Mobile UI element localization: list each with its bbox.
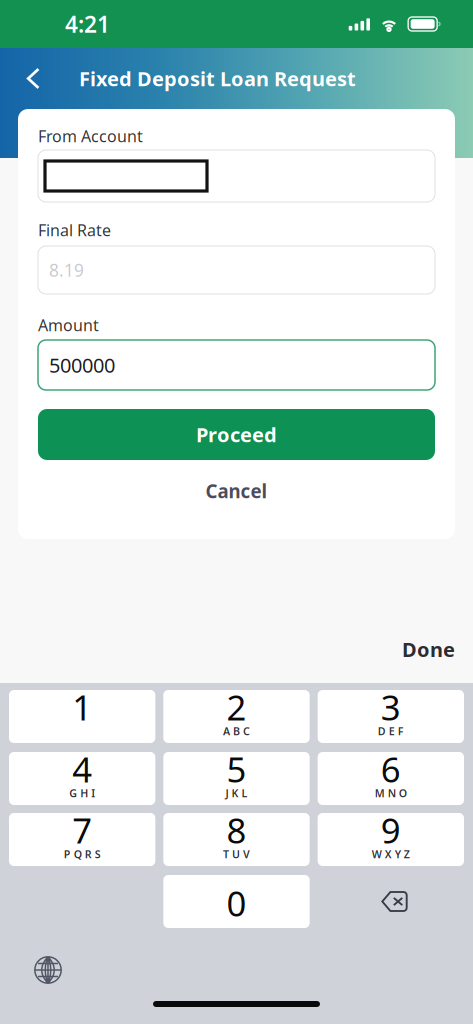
staticText: 0 [226,880,246,926]
staticText: 1 [72,684,92,730]
staticText: 8.19 [49,258,84,281]
button[interactable]: 0 [163,875,310,928]
staticText: 5 [226,746,246,792]
button[interactable]: 1 [9,690,155,743]
button[interactable]: Done [384,631,473,668]
staticText: Cancel [205,479,267,503]
button[interactable]: Back [12,56,54,100]
staticText: A B C [223,724,250,738]
staticText: 4:21 [65,9,110,39]
staticText: G H I [69,786,95,800]
staticText: 9 [381,807,401,853]
staticText: 500000 [49,352,115,378]
staticText: D E F [378,724,404,738]
staticText: T U V [223,847,250,861]
staticText: Fixed Deposit Loan Request [79,65,356,92]
staticText: 8 [226,807,246,853]
staticText: M N O [375,786,407,800]
staticText: Done [402,636,455,663]
staticText: 7 [72,807,92,853]
button[interactable]: Proceed [38,409,435,460]
staticText: From Account [38,125,143,147]
button[interactable]: Delete [318,875,464,928]
staticText: 6 [381,746,401,792]
staticText: 2 [226,684,246,730]
staticText: P Q R S [64,847,101,861]
staticText: 3 [381,684,401,730]
button[interactable]: 6 [318,752,464,805]
button[interactable]: Cancel [38,479,435,503]
staticText: W X Y Z [372,847,410,861]
button[interactable]: 9 [318,813,464,866]
staticText: Final Rate [38,219,111,241]
staticText: 4 [72,746,92,792]
staticText: Amount [38,314,99,336]
button[interactable]: 4 [9,752,155,805]
button[interactable]: 8 [163,813,310,866]
button[interactable]: 3 [318,690,464,743]
button[interactable]: 7 [9,813,155,866]
button[interactable]: 2 [163,690,310,743]
staticText: Proceed [196,421,277,448]
staticText: J K L [225,786,247,800]
button[interactable] [38,150,435,202]
button[interactable]: Next keyboard [23,945,73,995]
button[interactable]: 5 [163,752,310,805]
